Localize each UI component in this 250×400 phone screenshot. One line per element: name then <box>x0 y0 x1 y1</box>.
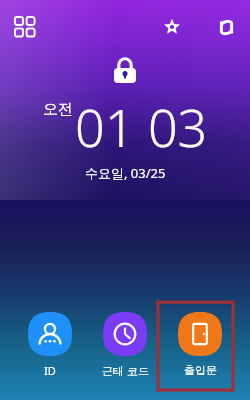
staticText: 수요일, 03/25 <box>85 164 166 182</box>
button[interactable]: 출입문 <box>163 300 237 377</box>
staticText: 출입문 <box>184 363 217 377</box>
staticText: 오전 <box>43 100 73 119</box>
staticText: ID <box>44 363 56 378</box>
button[interactable]: Connection <box>214 15 238 39</box>
button[interactable]: Star <box>160 15 184 39</box>
staticText: 근태 코드 <box>102 363 149 378</box>
button[interactable]: 근태 코드 <box>88 300 162 378</box>
button[interactable]: ID <box>13 300 87 378</box>
button[interactable]: Apps <box>12 14 38 40</box>
staticText: 01 03 <box>75 91 208 162</box>
